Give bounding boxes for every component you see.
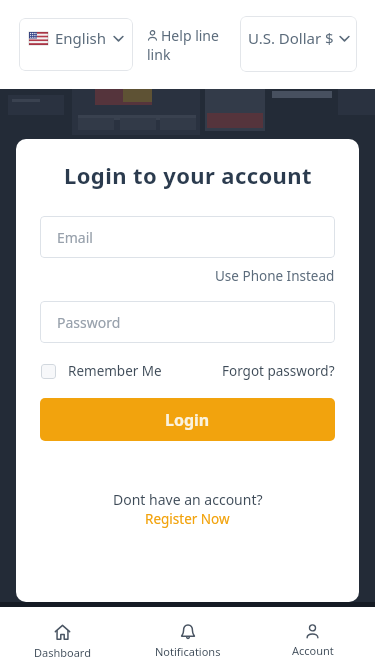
staticText: U.S. Dollar $ [248, 28, 334, 48]
button[interactable]: Dashboard [0, 607, 125, 667]
staticText: Help line [161, 26, 219, 45]
button[interactable]: Help line [147, 26, 219, 64]
button[interactable]: Use Phone Instead [16, 267, 335, 285]
button[interactable]: U.S. Dollar $ [240, 16, 357, 72]
button[interactable]: Login [40, 398, 335, 441]
button[interactable]: Account [250, 607, 375, 667]
staticText: Dont have an account? [113, 490, 263, 509]
staticText: English [55, 28, 107, 48]
button[interactable]: Notifications [125, 607, 250, 667]
staticText: Forgot password? [222, 362, 335, 380]
staticText: Login [165, 409, 210, 431]
staticText: Account [292, 643, 334, 658]
staticText: link [147, 45, 171, 64]
button[interactable]: Forgot password? [222, 362, 335, 380]
button[interactable]: Password [40, 301, 335, 343]
button[interactable]: Email [40, 216, 335, 258]
staticText: Use Phone Instead [215, 267, 335, 285]
staticText: Email [57, 228, 93, 247]
staticText: Password [57, 313, 121, 332]
button[interactable]: Register Now [145, 510, 230, 528]
staticText: Dashboard [34, 645, 91, 660]
button[interactable]: English [19, 18, 133, 71]
button[interactable] [41, 364, 56, 379]
staticText: Remember Me [68, 362, 162, 380]
staticText: Login to your account [64, 160, 312, 190]
staticText: Register Now [145, 510, 230, 528]
staticText: Notifications [155, 644, 221, 659]
